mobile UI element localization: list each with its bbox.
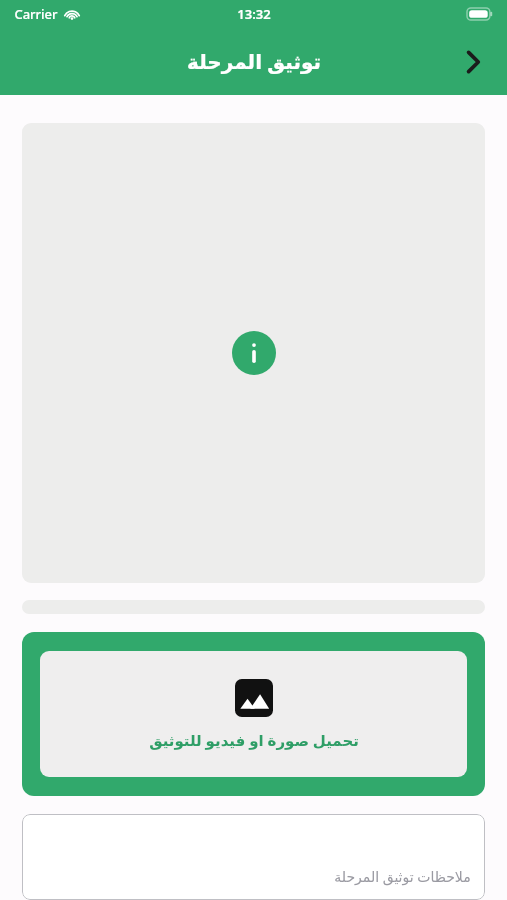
button[interactable]: ملاحظات توثيق المرحلة [22, 814, 485, 900]
staticText: تحميل صورة او فيديو للتوثيق [149, 730, 359, 750]
staticText: ملاحظات توثيق المرحلة [334, 867, 471, 886]
staticText: Carrier [14, 5, 58, 23]
button[interactable]: Next [451, 40, 495, 84]
button[interactable] [22, 123, 485, 583]
staticText: توثيق المرحلة [187, 48, 321, 75]
button[interactable]: تحميل صورة او فيديو للتوثيق [22, 632, 485, 796]
staticText: 13:32 [237, 5, 271, 23]
